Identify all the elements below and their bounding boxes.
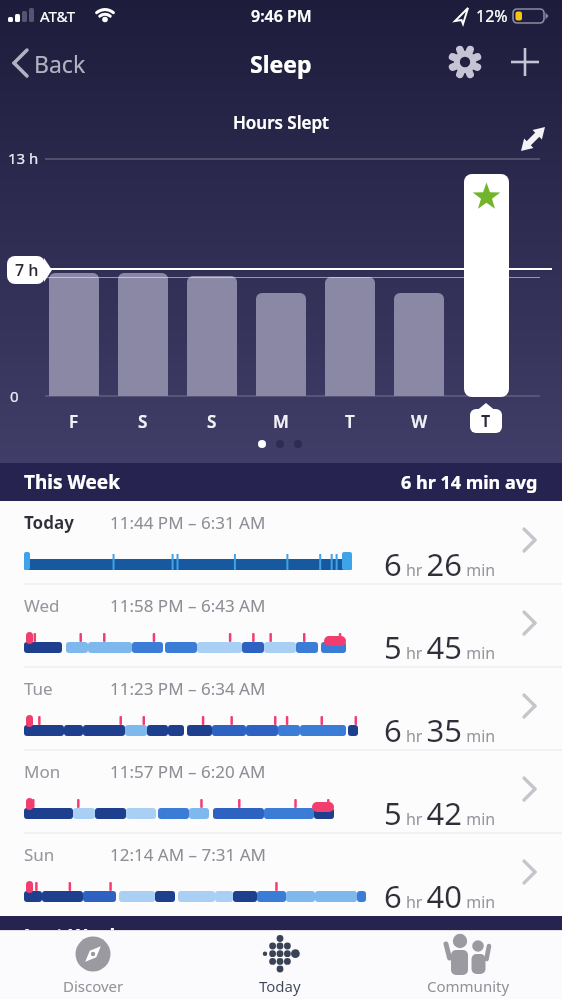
staticText: Discover (63, 976, 124, 996)
staticText: S (207, 410, 217, 433)
staticText: 12% (476, 5, 508, 27)
staticText: M (273, 410, 289, 433)
staticText: Today (24, 511, 74, 534)
staticText: 11:57 PM – 6:20 AM (110, 760, 266, 783)
button[interactable] (445, 42, 485, 82)
button[interactable] (512, 118, 552, 158)
staticText: 11:23 PM – 6:34 AM (110, 677, 266, 700)
staticText: Community (427, 976, 510, 996)
button[interactable] (505, 42, 545, 82)
staticText: 11:58 PM – 6:43 AM (110, 594, 266, 617)
button[interactable] (0, 750, 562, 833)
staticText: Sleep (250, 48, 312, 79)
staticText: T (345, 410, 355, 433)
staticText: 6 hr 26 min (384, 543, 496, 583)
button[interactable] (0, 463, 562, 501)
button[interactable]: 6 hr 40 min (360, 875, 496, 915)
staticText: Wed (24, 594, 60, 617)
button[interactable] (0, 833, 562, 916)
staticText: 0 (10, 386, 19, 406)
staticText: W (411, 410, 428, 433)
staticText: 6 hr 40 min (384, 875, 496, 915)
staticText: 11:44 PM – 6:31 AM (110, 511, 266, 534)
staticText: 5 hr 45 min (384, 626, 496, 666)
staticText: Tue (24, 677, 53, 700)
staticText: F (69, 410, 79, 433)
staticText: Mon (24, 760, 61, 783)
staticText: 9:46 PM (251, 5, 312, 27)
button[interactable]: 6 hr 26 min (360, 543, 496, 583)
button[interactable] (0, 584, 562, 667)
button[interactable]: 5 hr 42 min (360, 792, 496, 832)
staticText: This Week (24, 469, 120, 495)
staticText: Today (259, 976, 301, 996)
staticText: AT&T (40, 6, 75, 26)
staticText: Back (34, 48, 86, 78)
button[interactable] (464, 174, 509, 397)
button[interactable] (23, 932, 163, 998)
button[interactable] (211, 932, 351, 998)
button[interactable] (398, 932, 538, 998)
staticText: T (481, 410, 491, 432)
staticText: 6 hr 14 min avg (401, 470, 538, 495)
staticText: Last Week (24, 923, 122, 930)
staticText: S (138, 410, 148, 433)
button[interactable] (0, 667, 562, 750)
staticText: Hours Slept (233, 111, 330, 134)
staticText: 6 hr 35 min (384, 709, 496, 749)
button[interactable]: 6 hr 35 min (360, 709, 496, 749)
button[interactable]: 5 hr 45 min (360, 626, 496, 666)
staticText: 5 hr 42 min (384, 792, 496, 832)
staticText: 13 h (8, 148, 39, 168)
staticText: 12:14 AM – 7:31 AM (110, 843, 266, 866)
staticText: Sun (24, 843, 55, 866)
staticText: 7 h (15, 259, 39, 281)
button[interactable]: Back (34, 48, 114, 78)
button[interactable] (0, 501, 562, 584)
